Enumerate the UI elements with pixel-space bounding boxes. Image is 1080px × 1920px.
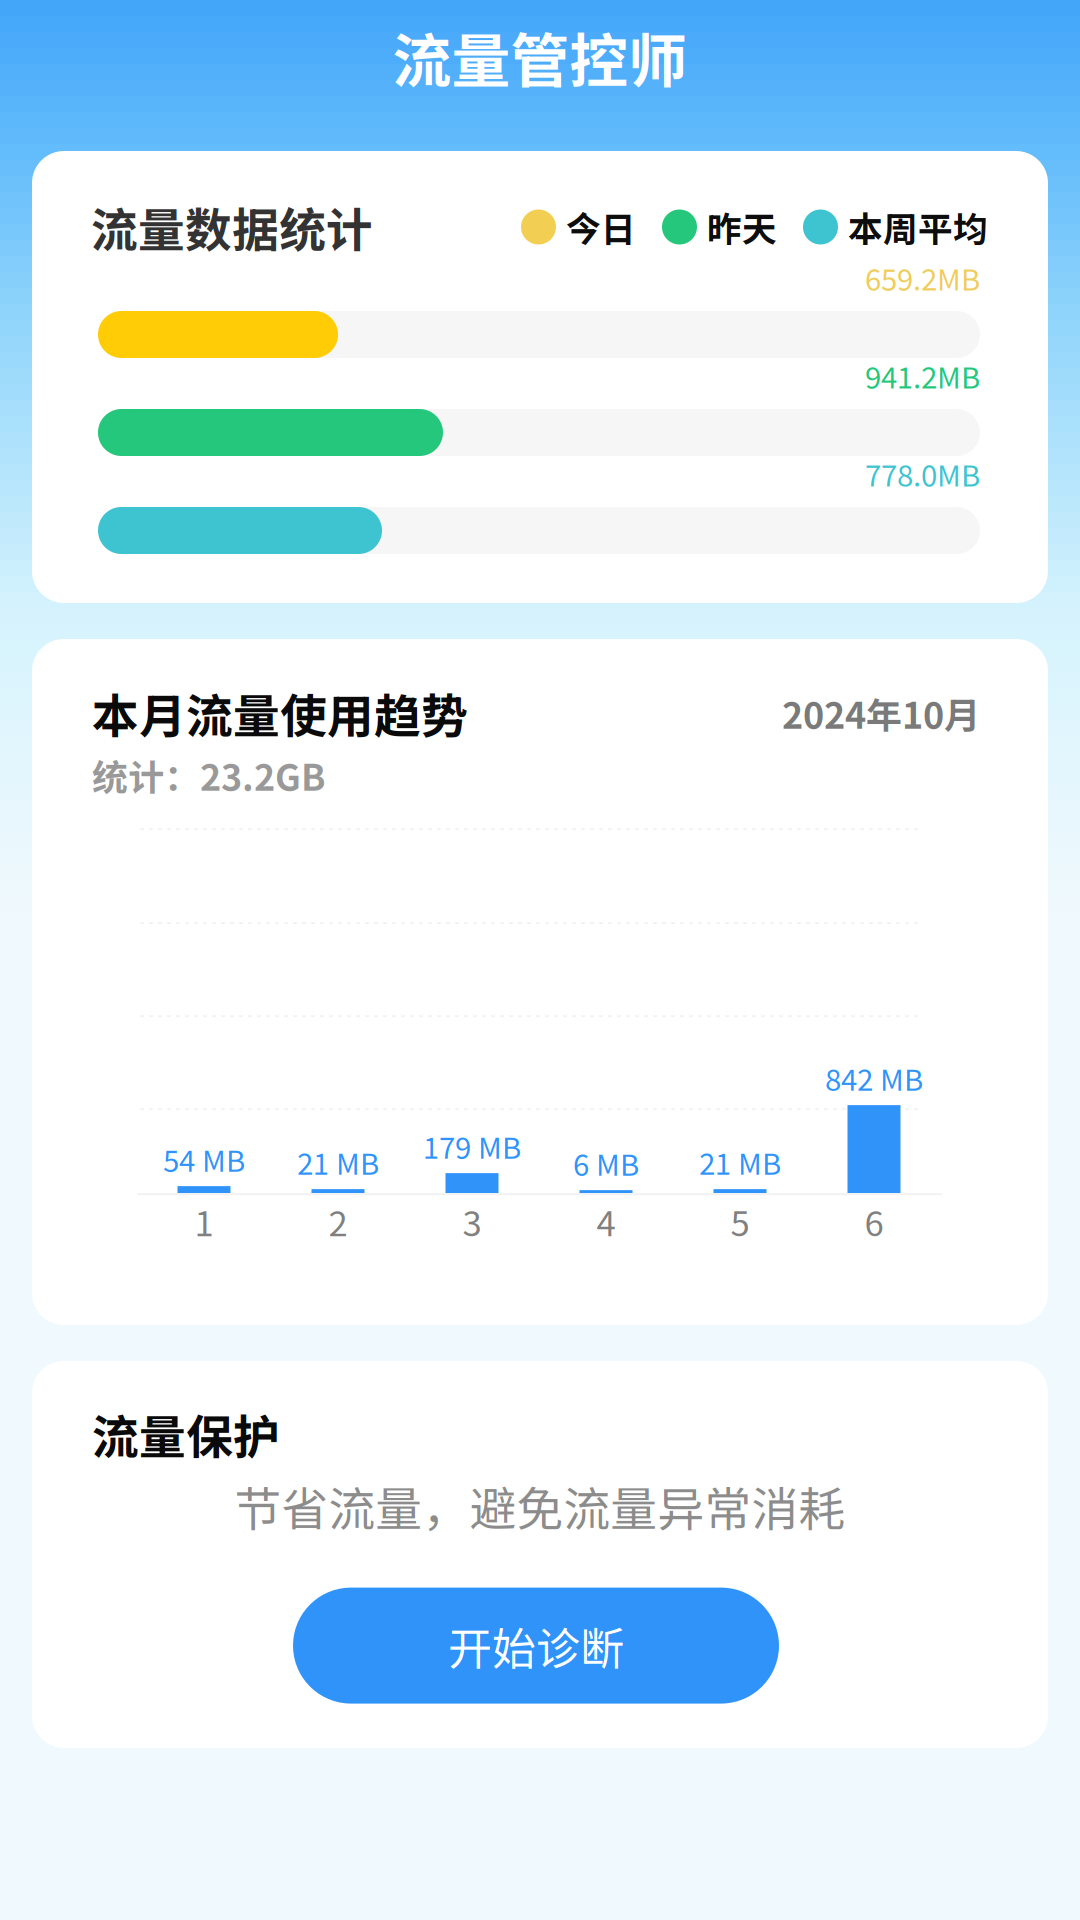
staticText: 昨天 [707,202,777,252]
staticText: 流量数据统计 [91,193,373,261]
staticText: 4 [596,1196,615,1246]
button[interactable]: 开始诊断 [293,1588,779,1704]
staticText: 流量管控师 [392,14,687,99]
staticText: 778.0MB [865,452,980,495]
staticText: 54 MB [163,1138,245,1180]
staticText: 2024年10月 [782,687,980,739]
staticText: 节省流量，避免流量异常消耗 [234,1472,845,1540]
staticText: 6 MB [573,1142,639,1184]
button[interactable]: 本周平均 [803,202,988,252]
staticText: 流量保护 [92,1400,280,1468]
staticText: 统计：23.2GB [92,749,326,801]
staticText: 179 MB [423,1125,521,1167]
staticText: 本周平均 [848,202,988,252]
button[interactable]: 昨天 [662,202,777,252]
staticText: 本月流量使用趋势 [92,679,468,747]
staticText: 842 MB [825,1057,923,1099]
staticText: 941.2MB [865,354,980,397]
staticText: 5 [730,1196,749,1246]
staticText: 今日 [566,202,636,252]
button[interactable]: 今日 [521,202,636,252]
staticText: 21 MB [699,1141,781,1183]
staticText: 开始诊断 [448,1614,624,1677]
staticText: 6 [864,1196,883,1246]
staticText: 1 [194,1196,213,1246]
staticText: 659.2MB [865,256,980,299]
staticText: 3 [462,1196,481,1246]
staticText: 2 [328,1196,347,1246]
staticText: 21 MB [297,1141,379,1183]
